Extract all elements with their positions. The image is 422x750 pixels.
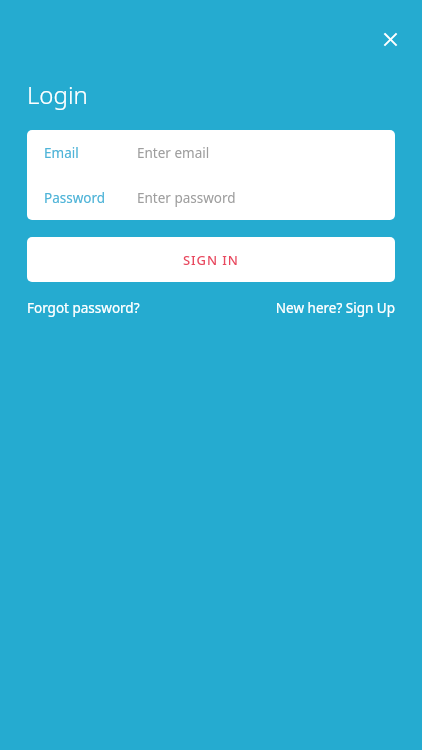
- button[interactable]: Close: [373, 22, 407, 56]
- staticText: Email: [44, 144, 79, 162]
- button[interactable]: Forgot password?: [27, 299, 140, 317]
- staticText: Enter email: [137, 144, 210, 162]
- button[interactable]: Password: [27, 175, 395, 220]
- staticText: Password: [44, 189, 106, 207]
- staticText: Enter password: [137, 189, 236, 207]
- staticText: SIGN IN: [183, 251, 239, 269]
- button[interactable]: New here? Sign Up: [275, 299, 395, 317]
- staticText: Login: [27, 78, 88, 111]
- staticText: Forgot password?: [27, 299, 140, 317]
- staticText: New here? Sign Up: [275, 299, 395, 317]
- button[interactable]: SIGN IN: [27, 237, 395, 282]
- button[interactable]: Email: [27, 130, 395, 175]
